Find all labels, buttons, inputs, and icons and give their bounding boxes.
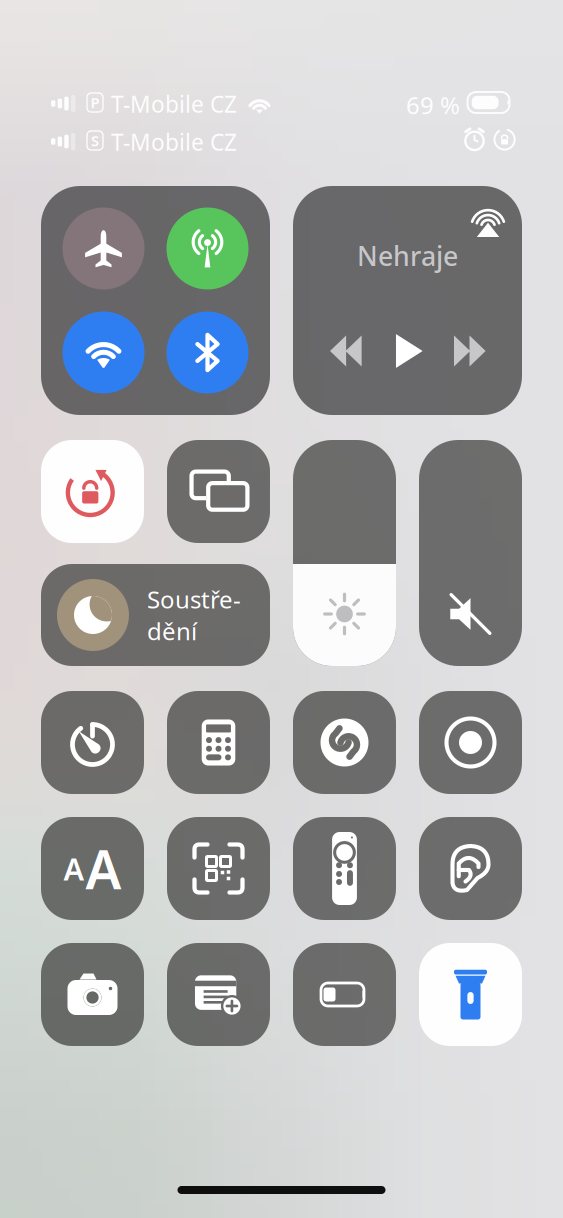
button[interactable]: Soustře- xyxy=(41,564,270,666)
button[interactable]: AirPlay xyxy=(466,198,510,242)
staticText: T-Mobile CZ xyxy=(111,127,237,157)
button[interactable]: Bluetooth xyxy=(166,311,248,393)
button[interactable] xyxy=(293,817,396,920)
button[interactable] xyxy=(167,817,270,920)
staticText: T-Mobile CZ xyxy=(111,89,237,119)
button[interactable] xyxy=(293,943,396,1046)
staticText: S xyxy=(91,131,99,150)
button[interactable]: Play xyxy=(382,326,432,376)
button[interactable]: A xyxy=(41,817,144,920)
button[interactable]: Volume xyxy=(419,440,522,666)
button[interactable]: Airplane Mode xyxy=(62,207,144,289)
button[interactable] xyxy=(167,691,270,794)
button[interactable] xyxy=(167,440,270,543)
button[interactable] xyxy=(41,943,144,1046)
staticText: Soustře- xyxy=(147,583,241,615)
button[interactable]: Brightness xyxy=(293,440,396,666)
button[interactable] xyxy=(419,691,522,794)
button[interactable] xyxy=(167,943,270,1046)
staticText: Nehraje xyxy=(357,238,458,273)
button[interactable]: Wi-Fi xyxy=(62,311,144,393)
button[interactable]: Cellular Data xyxy=(166,207,248,289)
button[interactable] xyxy=(419,943,522,1046)
staticText: P xyxy=(90,93,99,112)
staticText: 69 % xyxy=(406,89,460,121)
button[interactable] xyxy=(419,817,522,920)
button[interactable] xyxy=(293,691,396,794)
staticText: A xyxy=(63,848,84,889)
button[interactable] xyxy=(41,440,144,543)
staticText: A xyxy=(85,833,121,904)
button[interactable]: Fast Forward xyxy=(440,326,498,376)
staticText: dění xyxy=(147,615,197,647)
button[interactable] xyxy=(41,691,144,794)
button[interactable]: Rewind xyxy=(316,326,374,376)
